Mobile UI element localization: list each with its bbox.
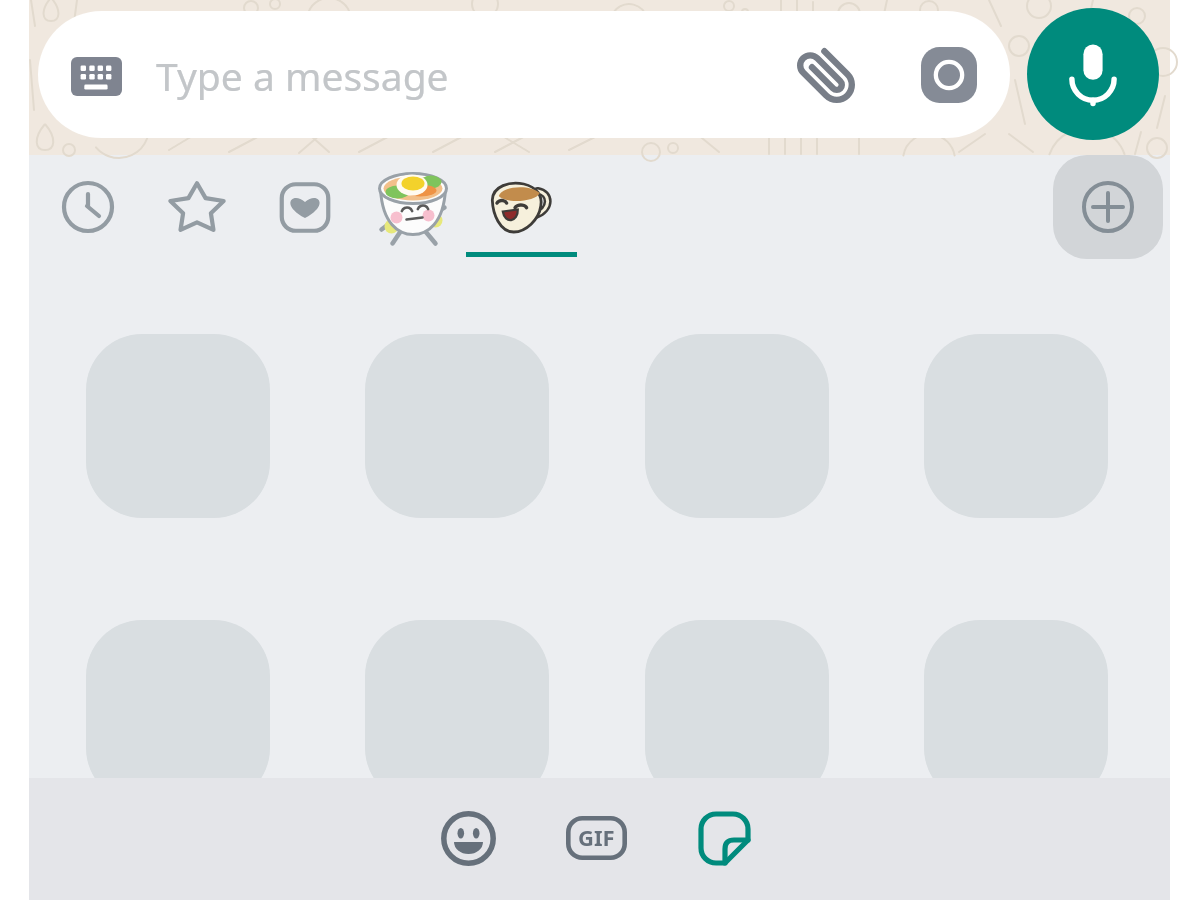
button[interactable]: Sticker xyxy=(645,620,829,804)
button[interactable]: Record voice message xyxy=(1027,8,1159,140)
button[interactable]: Sticker xyxy=(86,620,270,804)
button[interactable]: Sticker xyxy=(645,334,829,518)
button[interactable]: Camera xyxy=(904,30,994,120)
button[interactable]: Sticker xyxy=(86,334,270,518)
button[interactable]: Sticker xyxy=(924,620,1108,804)
button[interactable]: Sticker xyxy=(365,620,549,804)
staticText: Type a message xyxy=(156,49,449,102)
button[interactable]: Stickers xyxy=(680,794,768,882)
button[interactable]: Starred stickers xyxy=(141,155,250,259)
button[interactable]: Keyboard xyxy=(38,11,1010,138)
button[interactable]: Sticker xyxy=(924,334,1108,518)
button[interactable]: GIF xyxy=(552,794,640,882)
button[interactable]: Emoji xyxy=(424,794,512,882)
staticText: GIF xyxy=(578,822,615,852)
button[interactable]: Food sticker pack xyxy=(358,155,467,259)
button[interactable]: Sticker xyxy=(365,334,549,518)
button[interactable]: Attach xyxy=(781,32,871,118)
button[interactable]: Coffee sticker pack xyxy=(467,155,576,259)
button[interactable]: Favourite stickers xyxy=(250,155,359,259)
button[interactable]: Keyboard xyxy=(56,38,136,114)
button[interactable]: Add sticker pack xyxy=(1053,155,1163,259)
button[interactable]: Recent stickers xyxy=(33,155,142,259)
